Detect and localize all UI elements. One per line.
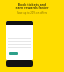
button[interactable] <box>9 52 18 55</box>
staticText: Save up to 20% on offers <box>4 11 60 15</box>
staticText: Book tickets and earn rewards faster <box>4 2 60 10</box>
button[interactable] <box>6 60 33 67</box>
